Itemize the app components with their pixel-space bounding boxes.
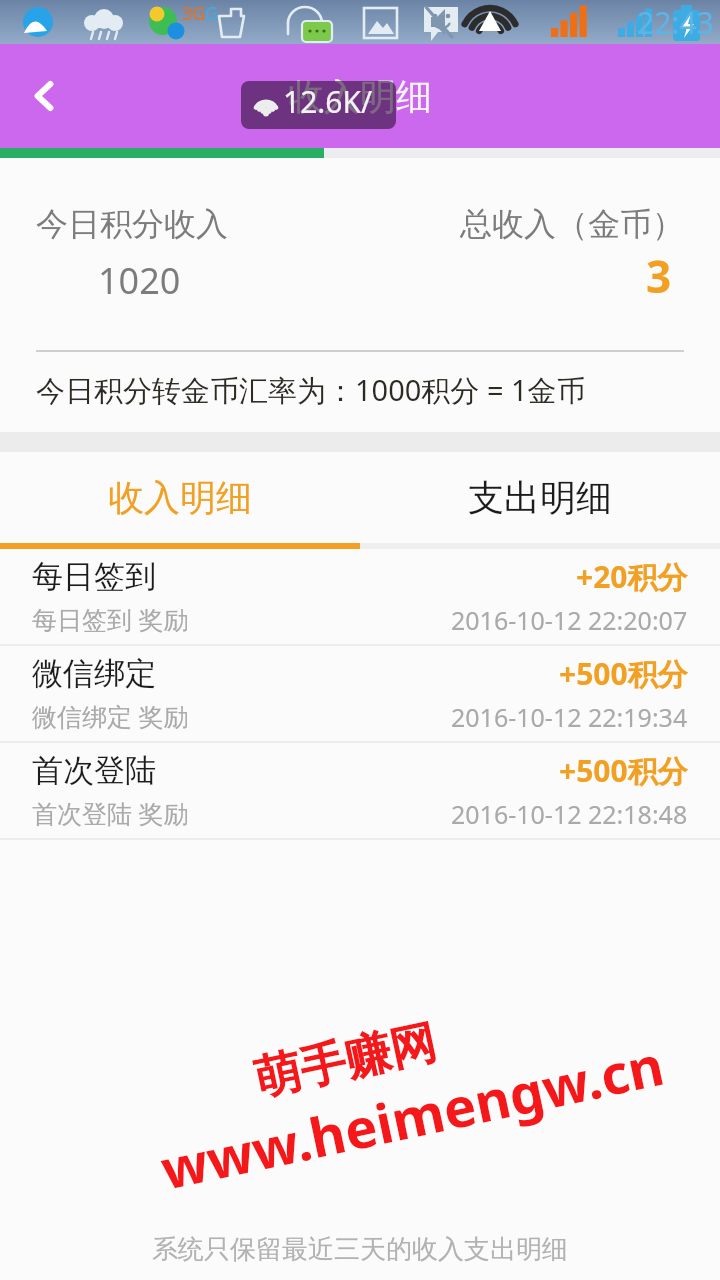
staticText: 今日积分转金币汇率为：1000积分 = 1金币 <box>36 370 586 410</box>
staticText: 微信绑定 <box>32 654 156 693</box>
staticText: 今日积分收入 <box>36 204 228 244</box>
staticText: +500积分 <box>559 653 688 694</box>
staticText: 2016-10-12 22:18:48 <box>451 797 688 831</box>
staticText: 系统只保留最近三天的收入支出明细 <box>0 1233 720 1266</box>
staticText: 首次登陆 <box>32 751 156 790</box>
staticText: 3 <box>646 246 672 306</box>
staticText: 22:43 <box>637 2 714 43</box>
staticText: 首次登陆 奖励 <box>32 796 189 830</box>
staticText: 12.6K/S <box>283 81 386 129</box>
staticText: 萌手赚网 <box>249 1014 441 1109</box>
button[interactable]: 支出明细 <box>360 452 720 543</box>
staticText: 每日签到 <box>32 557 156 596</box>
staticText: 2016-10-12 22:19:34 <box>451 700 688 734</box>
button[interactable]: 每日签到 <box>0 549 720 646</box>
staticText: 每日签到 奖励 <box>32 602 189 636</box>
button[interactable]: Back <box>12 64 76 128</box>
staticText: 2016-10-12 22:20:07 <box>451 603 688 637</box>
staticText: 支出明细 <box>468 475 612 520</box>
button[interactable]: 首次登陆 <box>0 743 720 840</box>
staticText: +20积分 <box>576 556 688 597</box>
staticText: 收入明细 <box>288 74 432 119</box>
staticText: 总收入（金币） <box>460 204 684 244</box>
staticText: G <box>205 1 219 26</box>
staticText: 1020 <box>98 256 181 305</box>
staticText: 3G <box>182 1 206 26</box>
button[interactable]: 微信绑定 <box>0 646 720 743</box>
button[interactable]: 收入明细 <box>0 452 360 543</box>
staticText: www.heimengw.cn <box>154 1027 670 1206</box>
staticText: 收入明细 <box>108 475 252 520</box>
staticText: +500积分 <box>559 750 688 791</box>
staticText: 微信绑定 奖励 <box>32 699 189 733</box>
